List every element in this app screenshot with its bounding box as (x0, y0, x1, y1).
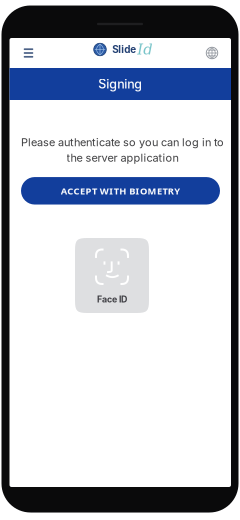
staticText: Id (137, 41, 152, 58)
staticText: Signing (98, 76, 142, 91)
staticText: ACCEPT WITH BIOMETRY (61, 185, 180, 197)
staticText: Face ID (97, 294, 127, 304)
button[interactable]: Menu (17, 38, 39, 68)
button[interactable]: Face ID (75, 238, 149, 313)
staticText: Please authenticate so you can log in to… (21, 136, 224, 164)
button[interactable]: Language (201, 38, 223, 68)
button[interactable]: ACCEPT WITH BIOMETRY (21, 177, 220, 205)
staticText: Slide (112, 43, 136, 55)
